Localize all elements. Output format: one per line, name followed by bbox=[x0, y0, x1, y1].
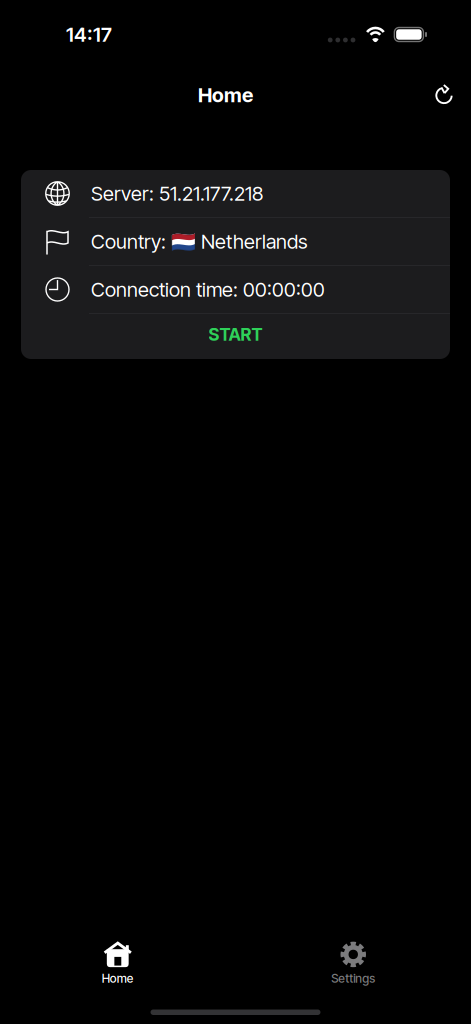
staticText: Connection time: 00:00:00 bbox=[91, 278, 325, 301]
button[interactable]: START bbox=[21, 314, 450, 359]
staticText: Server: 51.21.177.218 bbox=[91, 182, 263, 205]
staticText: START bbox=[208, 324, 262, 345]
staticText: Home bbox=[198, 83, 253, 107]
button[interactable]: Refresh bbox=[425, 75, 463, 114]
staticText: Settings bbox=[331, 971, 375, 986]
button[interactable]: Settings bbox=[235, 938, 471, 988]
staticText: Home bbox=[102, 971, 134, 986]
staticText: Country: 🇳🇱 Netherlands bbox=[91, 230, 308, 253]
button[interactable]: Home bbox=[0, 938, 235, 988]
staticText: 14:17 bbox=[66, 23, 112, 46]
